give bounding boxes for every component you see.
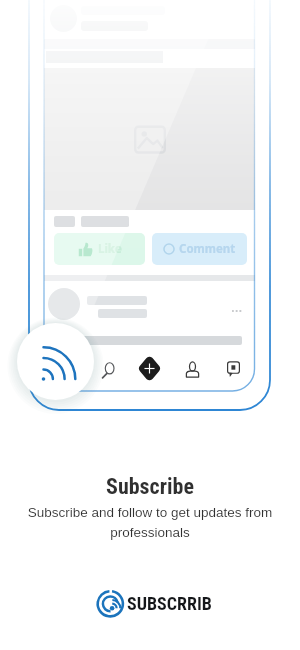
staticText: SUBSCRRIB — [127, 593, 212, 614]
button[interactable]: Subscribe — [17, 323, 94, 400]
button[interactable]: Profile — [176, 352, 208, 384]
staticText: Like — [98, 241, 122, 257]
staticText: Subscribe — [106, 474, 194, 500]
staticText: Comment — [179, 241, 236, 257]
button[interactable]: Messages — [217, 352, 249, 384]
button[interactable]: Like — [54, 233, 145, 265]
button[interactable]: Search — [91, 352, 123, 384]
button[interactable]: Add post — [133, 352, 165, 384]
staticText: Subscribe and follow to get updates from… — [21, 505, 279, 540]
button[interactable]: Comment — [152, 233, 247, 265]
staticText: ... — [231, 297, 243, 316]
